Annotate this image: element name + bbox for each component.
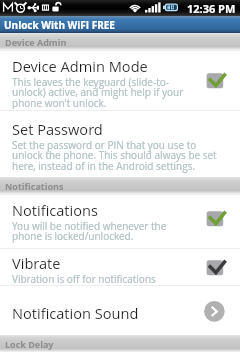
button[interactable]: Set Password [0,110,240,177]
staticText: Lock Delay [5,338,54,350]
staticText: Notification Sound [12,303,139,323]
staticText: Set the password or PIN that you use to … [12,138,217,173]
staticText: Unlock With WiFI FREE [4,18,115,32]
other: Checked [206,207,230,229]
staticText: Notifications [5,180,64,192]
staticText: This leaves the keyguard (slide-to- unlo… [12,75,184,109]
staticText: You will be notified whenever the phone … [12,219,167,243]
staticText: 12:36 PM [187,1,236,16]
button[interactable]: Vibrate [0,248,240,285]
staticText: Vibration is off for notifications [12,272,156,284]
staticText: Notifications [12,200,98,220]
staticText: Vibrate [12,253,61,273]
other: Choose notification sound [204,301,225,322]
button[interactable]: Device Admin Mode [0,50,240,110]
staticText: Device Admin Mode [12,56,148,76]
staticText: Set Password [12,119,103,139]
button[interactable]: Notifications [0,194,240,248]
other: Checked, disabled [206,256,230,278]
button[interactable]: Notification Sound [0,285,240,335]
staticText: Device Admin [5,36,67,48]
other: Checked [206,69,230,91]
